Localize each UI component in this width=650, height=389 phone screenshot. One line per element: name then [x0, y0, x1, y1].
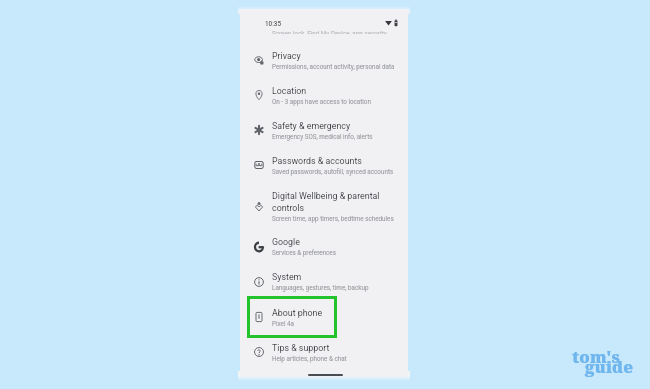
other: Google: [254, 242, 264, 252]
other: Passwords & accounts: [254, 160, 264, 170]
staticText: Safety & emergency: [272, 121, 351, 131]
staticText: tom's: [572, 345, 620, 367]
button[interactable]: About phone: [240, 299, 408, 334]
button[interactable]: Google: [240, 229, 408, 264]
other: Digital Wellbeing & parental: [254, 201, 264, 211]
staticText: Saved passwords, autofill, synced accoun…: [272, 168, 394, 175]
other: System: [254, 277, 264, 287]
button[interactable]: Passwords & accounts: [240, 147, 408, 182]
other: Tips & support: [254, 347, 264, 357]
staticText: Help articles, phone & chat: [272, 355, 347, 362]
other: Safety & emergency: [254, 125, 264, 135]
button[interactable]: Privacy: [240, 42, 408, 77]
staticText: Passwords & accounts: [272, 156, 362, 166]
staticText: controls: [272, 203, 305, 213]
button[interactable]: System: [240, 264, 408, 299]
staticText: Location: [272, 86, 307, 96]
button[interactable]: Tips & support: [240, 334, 408, 369]
staticText: Pixel 4a: [272, 320, 294, 327]
other: About phone: [254, 312, 264, 322]
staticText: System: [272, 272, 302, 282]
staticText: Services & preferences: [272, 249, 336, 256]
staticText: Google: [272, 237, 300, 247]
staticText: 10:35: [265, 20, 281, 27]
staticText: Languages, gestures, time, backup: [272, 284, 369, 291]
other: Privacy: [254, 55, 264, 65]
staticText: On - 3 apps have access to location: [272, 98, 371, 105]
staticText: Privacy: [272, 51, 301, 61]
other: Location: [254, 90, 264, 100]
staticText: About phone: [272, 308, 323, 318]
staticText: Digital Wellbeing & parental: [272, 191, 380, 201]
staticText: Emergency SOS, medical info, alerts: [272, 133, 373, 140]
staticText: Permissions, account activity, personal …: [272, 63, 395, 70]
staticText: guide: [585, 355, 634, 377]
staticText: Screen lock, Find My Device, app securit…: [272, 30, 387, 34]
button[interactable]: Safety & emergency: [240, 112, 408, 147]
staticText: Screen time, app timers, bedtime schedul…: [272, 215, 394, 222]
button[interactable]: Location: [240, 77, 408, 112]
staticText: Tips & support: [272, 343, 330, 353]
button[interactable]: Digital Wellbeing & parental: [240, 183, 408, 230]
